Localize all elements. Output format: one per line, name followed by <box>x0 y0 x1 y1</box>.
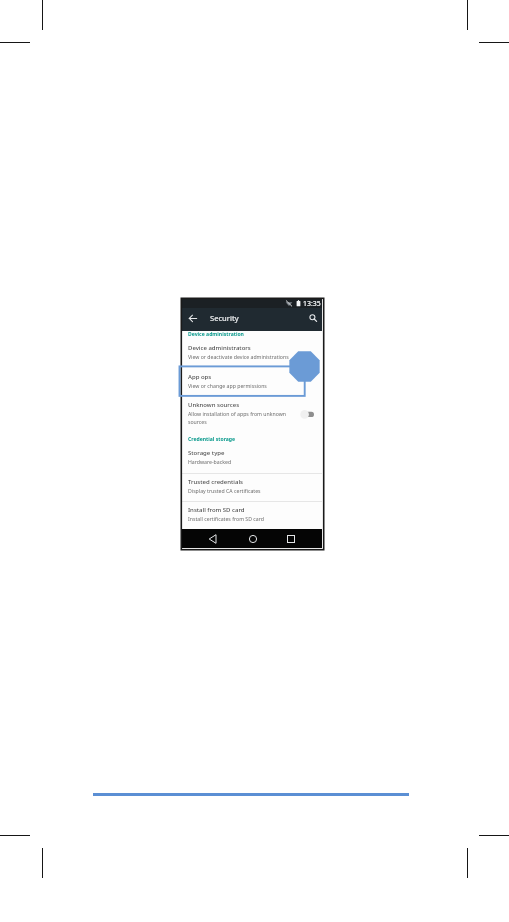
button[interactable]: Search <box>307 312 319 324</box>
button[interactable]: Back <box>206 532 220 546</box>
button[interactable]: Install from SD card <box>181 505 322 531</box>
button[interactable]: Recent apps <box>284 532 298 546</box>
staticText: Security <box>210 313 239 323</box>
staticText: Credential storage <box>188 436 236 443</box>
staticText: View or change app permissions <box>188 382 267 389</box>
staticText: Install certificates from SD card <box>188 515 264 522</box>
button[interactable]: Device administrators <box>181 343 322 369</box>
staticText: 13:35 <box>303 299 321 308</box>
staticText: Install from SD card <box>188 506 245 514</box>
staticText: Unknown sources <box>188 401 240 409</box>
button[interactable]: Storage type <box>181 448 322 474</box>
button[interactable]: Unknown sources <box>181 400 322 433</box>
staticText: Hardware-backed <box>188 458 232 465</box>
staticText: App ops <box>188 373 212 381</box>
button[interactable]: Unknown sources toggle <box>295 405 313 421</box>
staticText: Device administrators <box>188 344 251 352</box>
staticText: Storage type <box>188 449 225 457</box>
button[interactable]: Trusted credentials <box>181 477 322 503</box>
staticText: Device administration <box>188 331 244 338</box>
button[interactable]: Navigate up <box>187 312 199 324</box>
staticText: View or deactivate device administration… <box>188 353 289 360</box>
staticText: Display trusted CA certificates <box>188 487 261 494</box>
button[interactable]: Home <box>246 532 260 546</box>
staticText: Trusted credentials <box>188 478 243 486</box>
staticText: sources <box>188 418 207 425</box>
staticText: Allow installation of apps from unknown <box>188 410 287 417</box>
button[interactable]: App ops <box>181 372 322 398</box>
